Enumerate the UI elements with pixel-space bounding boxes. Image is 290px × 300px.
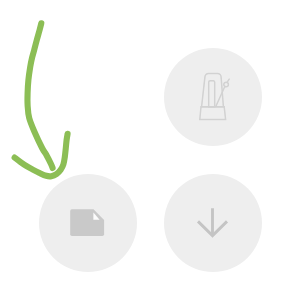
button[interactable]: Download: [164, 174, 262, 272]
button[interactable]: Metronome: [164, 48, 262, 146]
button[interactable]: Notes: [39, 174, 137, 272]
